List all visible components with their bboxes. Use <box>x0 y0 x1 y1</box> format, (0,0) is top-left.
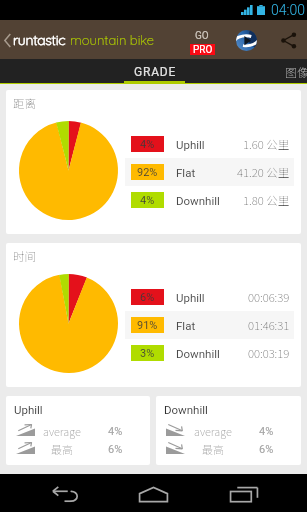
staticText: average <box>194 423 232 439</box>
staticText: GO <box>195 30 209 42</box>
button[interactable]: GRADE <box>110 59 200 84</box>
button[interactable]: 图像 <box>285 59 307 84</box>
button[interactable]: Back <box>40 474 88 512</box>
button[interactable]: 6% <box>125 283 294 311</box>
button[interactable]: Globe <box>232 26 260 54</box>
button[interactable]: average <box>6 422 150 440</box>
staticText: Downhill <box>176 347 220 360</box>
staticText: Uphill <box>176 138 205 151</box>
staticText: 4% <box>140 194 155 207</box>
staticText: 4% <box>259 425 274 438</box>
staticText: 91% <box>137 319 158 332</box>
staticText: 距离 <box>13 95 36 112</box>
staticText: 6% <box>108 443 123 456</box>
button[interactable]: 92% <box>125 158 294 186</box>
button[interactable]: 91% <box>125 311 294 339</box>
staticText: 4% <box>108 425 123 438</box>
button[interactable]: 3% <box>125 339 294 367</box>
staticText: 4% <box>140 138 155 151</box>
button[interactable]: average <box>156 422 301 440</box>
staticText: average <box>43 423 81 439</box>
staticText: 00:06:39 <box>248 289 290 306</box>
staticText: Uphill <box>176 291 205 304</box>
button[interactable]: 4% <box>125 130 294 158</box>
staticText: Downhill <box>176 194 220 207</box>
staticText: PRO <box>193 44 213 55</box>
button[interactable]: 4% <box>125 186 294 214</box>
staticText: 41.20 公里 <box>237 164 290 181</box>
staticText: runtastic <box>13 31 66 49</box>
staticText: 92% <box>137 166 158 179</box>
button[interactable]: GO <box>186 24 218 55</box>
staticText: 01:46:31 <box>248 317 290 334</box>
button[interactable]: 最高 <box>6 440 150 458</box>
staticText: 时间 <box>13 248 36 265</box>
staticText: 3% <box>140 347 155 360</box>
button[interactable]: Downhill <box>156 396 301 465</box>
staticText: 6% <box>259 443 274 456</box>
staticText: 00:03:19 <box>248 345 290 362</box>
staticText: Uphill <box>14 403 43 416</box>
staticText: 最高 <box>51 441 73 457</box>
button[interactable]: Recents <box>220 474 268 512</box>
button[interactable]: Uphill <box>6 396 150 465</box>
button[interactable]: Share <box>274 26 302 54</box>
staticText: mountain bike <box>70 32 155 48</box>
staticText: Downhill <box>164 403 208 416</box>
button[interactable]: Back <box>0 31 157 49</box>
button[interactable]: Home <box>129 474 177 512</box>
staticText: 图像 <box>285 63 307 80</box>
staticText: 6% <box>140 291 155 304</box>
staticText: Flat <box>176 319 196 332</box>
staticText: Flat <box>176 166 196 179</box>
staticText: 04:00 <box>271 2 306 18</box>
button[interactable]: 最高 <box>156 440 301 458</box>
other: Back <box>4 34 11 47</box>
staticText: GRADE <box>134 65 177 79</box>
staticText: 1.60 公里 <box>243 136 290 153</box>
staticText: 1.80 公里 <box>243 192 290 209</box>
staticText: 最高 <box>202 441 224 457</box>
